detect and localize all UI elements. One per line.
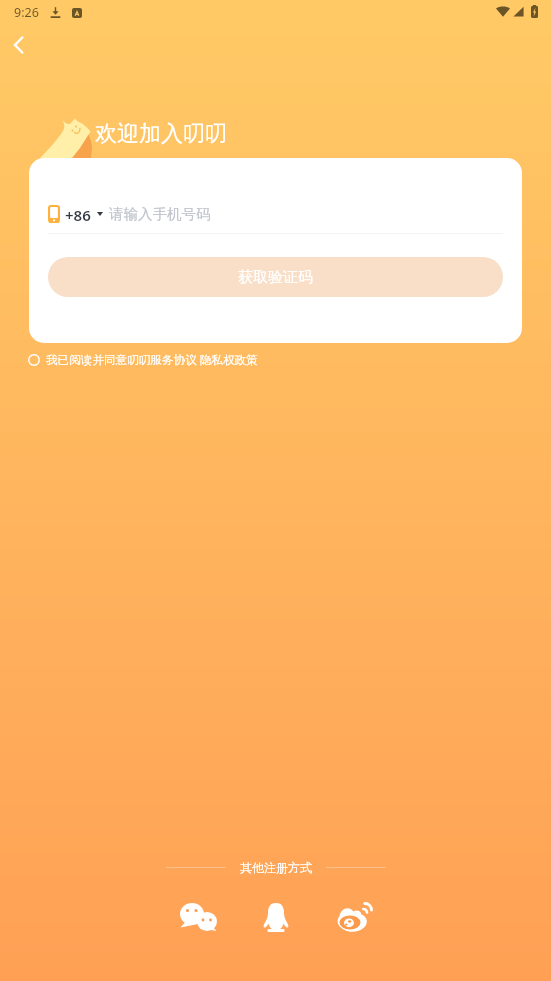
- staticText: 其他注册方式: [240, 860, 312, 875]
- staticText: +86: [65, 205, 91, 223]
- button[interactable]: Sign up with QQ: [248, 889, 304, 945]
- staticText: 获取验证码: [238, 268, 313, 287]
- button[interactable]: 我已阅读并同意叨叨服务协议 隐私权政策: [28, 352, 551, 368]
- staticText: 9:26: [14, 4, 39, 21]
- button[interactable]: 获取验证码: [48, 257, 503, 297]
- staticText: 我已阅读并同意叨叨服务协议 隐私权政策: [46, 352, 258, 368]
- staticText: 欢迎加入叨叨: [95, 120, 227, 148]
- button[interactable]: Sign up with Weibo: [326, 889, 382, 945]
- button[interactable]: Back: [0, 27, 36, 63]
- staticText: 请输入手机号码: [109, 205, 211, 223]
- button[interactable]: +86: [48, 205, 503, 223]
- button[interactable]: Sign up with WeChat: [170, 889, 226, 945]
